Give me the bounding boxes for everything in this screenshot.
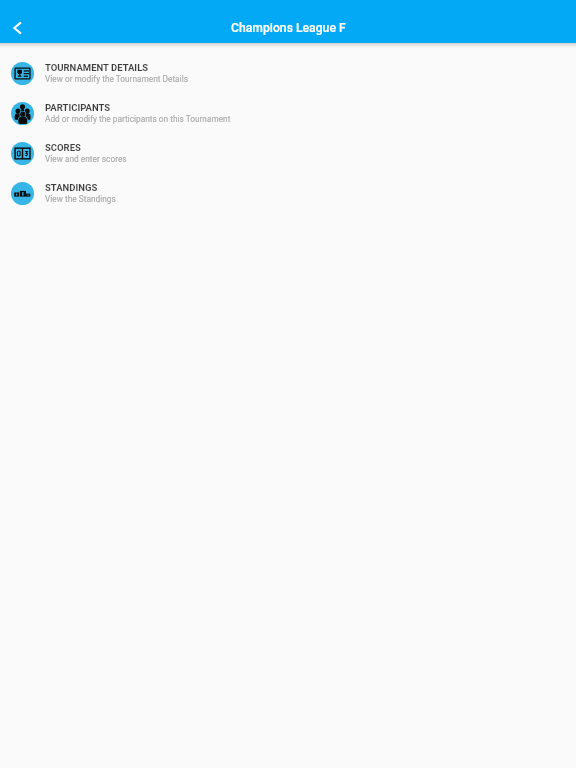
staticText: Champions League F (231, 21, 346, 35)
staticText: STANDINGS (45, 182, 98, 193)
staticText: Add or modify the participants on this T… (45, 114, 231, 124)
staticText: View or modify the Tournament Details (45, 74, 188, 84)
button[interactable]: STANDINGS (0, 173, 576, 213)
staticText: PARTICIPANTS (45, 102, 111, 113)
button[interactable]: TOURNAMENT DETAILS (0, 53, 576, 93)
button[interactable]: SCORES (0, 133, 576, 173)
staticText: TOURNAMENT DETAILS (45, 62, 149, 73)
button[interactable]: Back (0, 6, 33, 49)
staticText: View and enter scores (45, 154, 127, 164)
staticText: View the Standings (45, 194, 116, 204)
button[interactable]: PARTICIPANTS (0, 93, 576, 133)
staticText: SCORES (45, 142, 81, 153)
